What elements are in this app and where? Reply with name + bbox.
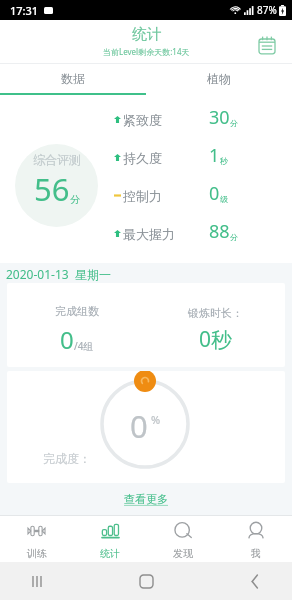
button[interactable]: Calendar xyxy=(254,32,280,58)
staticText: 最大握力 xyxy=(123,226,175,242)
button[interactable]: 查看更多 xyxy=(118,489,174,509)
staticText: 分 xyxy=(70,193,80,206)
staticText: 统计 xyxy=(100,547,120,560)
button[interactable]: Home xyxy=(133,568,159,594)
staticText: 分 xyxy=(230,118,238,128)
button[interactable]: 数据 xyxy=(0,64,146,93)
staticText: 我 xyxy=(251,547,261,560)
staticText: 秒 xyxy=(220,156,228,166)
staticText: 2020-01-13 星期一 xyxy=(6,266,111,282)
staticText: /4组 xyxy=(74,339,94,353)
staticText: 统计 xyxy=(132,25,162,44)
staticText: 训练 xyxy=(27,547,47,560)
staticText: 0 xyxy=(130,405,148,447)
button[interactable]: Recents xyxy=(24,568,50,594)
staticText: 数据 xyxy=(61,71,85,86)
staticText: 0秒 xyxy=(199,325,233,354)
staticText: 分 xyxy=(230,232,238,242)
staticText: 1 xyxy=(209,143,220,168)
staticText: 发现 xyxy=(173,547,193,560)
button[interactable]: 我 xyxy=(219,516,292,562)
staticText: 查看更多 xyxy=(124,492,168,506)
button[interactable]: 训练 xyxy=(0,516,73,562)
staticText: 完成度： xyxy=(43,451,91,466)
staticText: 综合评测 xyxy=(33,152,81,167)
staticText: 0 xyxy=(209,181,220,206)
staticText: 56 xyxy=(34,168,70,210)
staticText: 锻炼时长： xyxy=(188,306,243,320)
staticText: 17:31 xyxy=(10,3,39,18)
button[interactable]: 植物 xyxy=(146,64,292,93)
staticText: 紧致度 xyxy=(123,112,162,128)
staticText: 完成组数 xyxy=(55,304,99,318)
staticText: 级 xyxy=(220,194,228,204)
staticText: 0 xyxy=(60,323,74,356)
staticText: 当前Level剩余天数:14天 xyxy=(103,46,190,57)
staticText: 87% xyxy=(257,3,277,17)
button[interactable]: 发现 xyxy=(146,516,219,562)
staticText: 植物 xyxy=(207,71,231,86)
staticText: 88 xyxy=(209,219,230,244)
staticText: 30 xyxy=(209,105,230,130)
button[interactable]: Back xyxy=(242,568,268,594)
staticText: 控制力 xyxy=(123,188,162,204)
staticText: % xyxy=(151,412,161,427)
button[interactable]: 统计 xyxy=(73,516,146,562)
staticText: 持久度 xyxy=(123,150,162,166)
